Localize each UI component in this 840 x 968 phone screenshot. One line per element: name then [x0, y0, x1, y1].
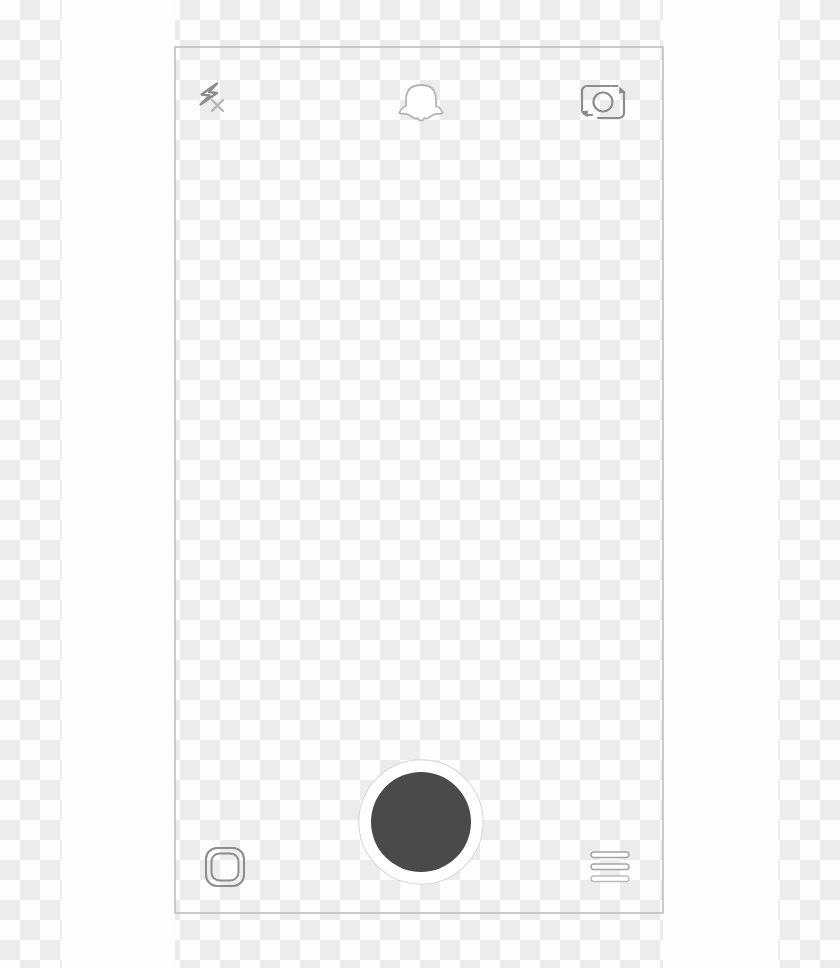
button[interactable]: Flip camera [576, 80, 632, 128]
button[interactable]: Memories [203, 845, 247, 889]
button[interactable]: Snapchat [397, 82, 445, 130]
button[interactable]: Menu [586, 843, 634, 889]
button[interactable]: Capture [357, 758, 485, 886]
button[interactable]: Flash off [196, 80, 242, 126]
